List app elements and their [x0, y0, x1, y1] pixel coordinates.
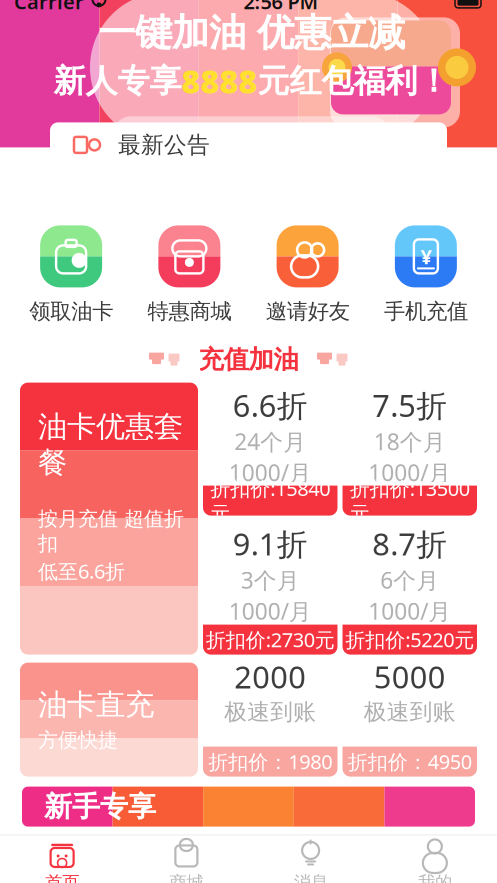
- staticText: 商城: [169, 872, 203, 883]
- staticText: 新人专享: [53, 61, 181, 101]
- staticText: 低至6.6折: [38, 558, 125, 584]
- staticText: 按月充值 超值折扣: [38, 507, 184, 556]
- staticText: 元红包福利！: [257, 61, 449, 101]
- button[interactable]: 我的: [373, 838, 497, 883]
- staticText: 方便快捷: [38, 728, 118, 752]
- staticText: 消息: [294, 872, 328, 883]
- staticText: 2:56 PM: [243, 0, 318, 15]
- button[interactable]: 最新公告: [50, 122, 447, 167]
- button[interactable]: 6.6折: [203, 383, 337, 516]
- staticText: 8.7折: [372, 523, 447, 564]
- staticText: 极速到账: [364, 698, 456, 726]
- staticText: 极速到账: [224, 698, 316, 726]
- staticText: 折扣价:5220元: [345, 626, 474, 653]
- staticText: 邀请好友: [266, 298, 350, 325]
- staticText: 新注册且油卡套餐首购用户: [131, 121, 371, 146]
- staticText: 3个月: [241, 565, 300, 595]
- staticText: 折扣价:15840元: [210, 475, 330, 526]
- staticText: 6.6折: [233, 385, 308, 425]
- button[interactable]: 9.1折: [203, 521, 337, 655]
- staticText: 5000: [374, 656, 446, 697]
- staticText: 折扣价:2730元: [206, 626, 335, 653]
- button[interactable]: 油卡优惠套餐: [20, 383, 198, 655]
- staticText: 1000/月: [229, 457, 312, 488]
- staticText: 9.1折: [233, 523, 308, 564]
- button[interactable]: 5000: [342, 663, 477, 777]
- staticText: Carrier: [14, 0, 84, 15]
- button[interactable]: 油卡直充: [20, 663, 198, 777]
- button[interactable]: 首页: [0, 838, 124, 883]
- staticText: 6个月: [380, 565, 439, 595]
- staticText: 18个月: [374, 426, 446, 456]
- button[interactable]: 邀请好友: [248, 225, 367, 325]
- button[interactable]: 特惠商城: [130, 225, 248, 325]
- button[interactable]: 商城: [124, 838, 248, 883]
- staticText: 7.5折: [372, 385, 447, 425]
- staticText: 一键加油 优惠立减: [98, 10, 405, 56]
- button[interactable]: 2000: [203, 663, 337, 777]
- button[interactable]: 领取油卡: [12, 225, 130, 325]
- staticText: 最新公告: [118, 131, 210, 159]
- button[interactable]: 7.5折: [342, 383, 477, 516]
- staticText: 2000: [234, 656, 306, 697]
- staticText: 油卡优惠套餐: [38, 409, 183, 481]
- staticText: 我的: [418, 872, 452, 883]
- staticText: 折扣价：1980: [208, 748, 332, 775]
- staticText: 领取油卡: [29, 298, 113, 325]
- staticText: 首页: [45, 872, 79, 883]
- staticText: 1000/月: [368, 596, 451, 626]
- staticText: 新手专享: [44, 789, 156, 824]
- staticText: 折扣价：4950: [348, 748, 472, 775]
- button[interactable]: ¥: [367, 225, 485, 325]
- button[interactable]: 8.7折: [342, 521, 477, 655]
- staticText: 折扣价:13500元: [350, 475, 470, 526]
- staticText: ¥: [420, 243, 431, 270]
- staticText: 24个月: [234, 426, 306, 456]
- button[interactable]: 消息: [248, 838, 373, 883]
- staticText: 油卡直充: [38, 687, 154, 723]
- staticText: 8888: [181, 60, 257, 102]
- staticText: 手机充值: [384, 298, 468, 325]
- staticText: 特惠商城: [147, 298, 231, 325]
- staticText: 充值加油: [198, 344, 298, 375]
- staticText: 1000/月: [229, 596, 312, 626]
- staticText: 1000/月: [368, 457, 451, 488]
